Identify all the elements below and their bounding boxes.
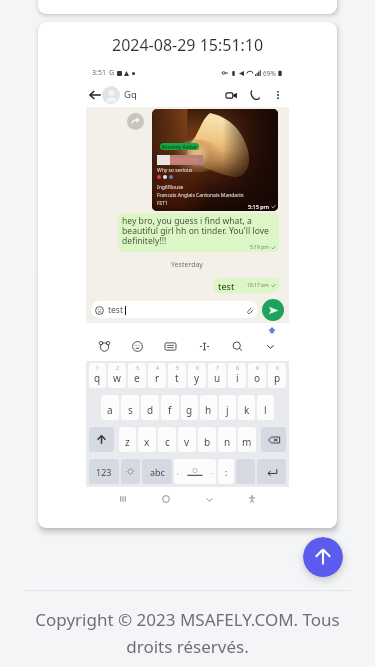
staticText: Gq <box>124 88 137 101</box>
button[interactable]: Space <box>174 459 216 484</box>
button[interactable]: 8 <box>228 363 246 388</box>
staticText: s <box>128 403 133 417</box>
button[interactable]: 7 <box>208 363 226 388</box>
button[interactable]: x <box>138 427 156 452</box>
button[interactable]: GIF <box>164 340 177 353</box>
staticText: n <box>224 435 231 449</box>
button[interactable]: Backspace <box>261 427 286 452</box>
staticText: z <box>125 435 130 449</box>
staticText: g <box>186 403 193 417</box>
button[interactable]: j <box>219 395 236 420</box>
staticText: o <box>254 371 261 385</box>
staticText: Francais Anglais Cantonais Mandarin <box>157 192 244 199</box>
button[interactable]: Search <box>231 340 244 353</box>
button[interactable]: Settings <box>121 459 140 484</box>
button[interactable]: z <box>119 427 136 452</box>
staticText: j <box>226 403 229 417</box>
button[interactable]: Forward <box>127 113 144 130</box>
staticText: FST1 <box>157 200 168 207</box>
button[interactable]: Stickers <box>98 340 111 353</box>
staticText: q <box>94 371 101 385</box>
button[interactable]: c <box>158 427 176 452</box>
button[interactable]: abc <box>142 459 172 484</box>
staticText: 0 <box>276 365 279 372</box>
button[interactable]: Video call <box>223 87 239 103</box>
button[interactable]: 6 <box>188 363 206 388</box>
staticText: e <box>134 371 140 385</box>
staticText: c <box>165 435 170 449</box>
button[interactable]: More options <box>271 88 284 101</box>
staticText: y <box>194 371 200 385</box>
button[interactable]: f <box>161 395 179 420</box>
button[interactable]: Home <box>160 493 172 505</box>
staticText: 2 <box>116 365 119 372</box>
staticText: p <box>274 371 281 385</box>
button[interactable]: v <box>178 427 196 452</box>
staticText: 3 <box>136 365 139 372</box>
button[interactable]: s <box>121 395 139 420</box>
button[interactable]: Accessibility <box>246 493 258 505</box>
staticText: k <box>244 403 250 417</box>
staticText: G <box>109 68 115 78</box>
button[interactable]: Back <box>203 493 215 505</box>
staticText: : <box>225 466 228 478</box>
button[interactable]: Back <box>88 88 102 102</box>
staticText: a <box>107 403 113 417</box>
staticText: h <box>205 403 212 417</box>
button[interactable]: b <box>198 427 216 452</box>
staticText: hey bro, you guess i find what, a beauti… <box>122 215 277 246</box>
button[interactable]: k <box>238 395 255 420</box>
button[interactable]: d <box>141 395 159 420</box>
staticText: l <box>264 403 267 417</box>
staticText: 7 <box>216 365 219 372</box>
button[interactable]: 5 <box>168 363 186 388</box>
staticText: v <box>184 435 190 449</box>
staticText: w <box>113 371 121 385</box>
staticText: 5:15 pm <box>248 203 269 210</box>
button[interactable]: l <box>257 395 274 420</box>
staticText: Why so serious <box>157 167 193 174</box>
button[interactable]: Emoji <box>131 340 144 353</box>
button[interactable]: Shift <box>89 427 114 452</box>
button[interactable]: a <box>101 395 119 420</box>
button[interactable]: m <box>238 427 256 452</box>
button[interactable]: Scroll to top <box>303 537 343 577</box>
button[interactable]: 9 <box>248 363 266 388</box>
staticText: i <box>236 371 239 385</box>
staticText: 5 <box>176 365 179 372</box>
staticText: 1 <box>96 365 99 372</box>
staticText: x <box>144 435 150 449</box>
staticText: Copyright © 2023 MSAFELY.COM. Tous droit… <box>30 608 345 658</box>
staticText: Yesterday <box>171 260 203 270</box>
button[interactable]: Enter <box>257 459 286 484</box>
staticText: 2024-08-29 15:51:10 <box>112 34 264 56</box>
staticText: 8 <box>236 365 239 372</box>
button[interactable]: 1 <box>89 363 106 388</box>
button[interactable]: Send <box>262 299 284 321</box>
staticText: 10:17 am <box>247 282 269 289</box>
staticText: r <box>155 371 160 385</box>
staticText: 6 <box>196 365 199 372</box>
staticText: 3:51 <box>92 68 106 78</box>
button[interactable]: : <box>218 459 234 484</box>
button[interactable]: 4 <box>148 363 166 388</box>
button[interactable]: h <box>200 395 217 420</box>
button[interactable]: Text editing <box>198 340 211 353</box>
staticText: 69% <box>263 69 276 78</box>
button[interactable]: Call <box>247 87 263 103</box>
button[interactable]: 3 <box>128 363 146 388</box>
button[interactable]: 2 <box>108 363 126 388</box>
button[interactable]: test <box>91 301 258 318</box>
staticText: 5:19 pm <box>250 244 269 251</box>
button[interactable]: 0 <box>268 363 286 388</box>
button[interactable]: n <box>218 427 236 452</box>
button[interactable]: Recents <box>117 493 129 505</box>
staticText: d <box>147 403 154 417</box>
button[interactable]: g <box>181 395 198 420</box>
staticText: 4 <box>156 365 159 372</box>
staticText: test <box>218 280 235 292</box>
staticText: 123 <box>96 466 112 478</box>
button[interactable]: 123 <box>89 459 119 484</box>
button[interactable]: Hide keyboard <box>264 340 277 353</box>
